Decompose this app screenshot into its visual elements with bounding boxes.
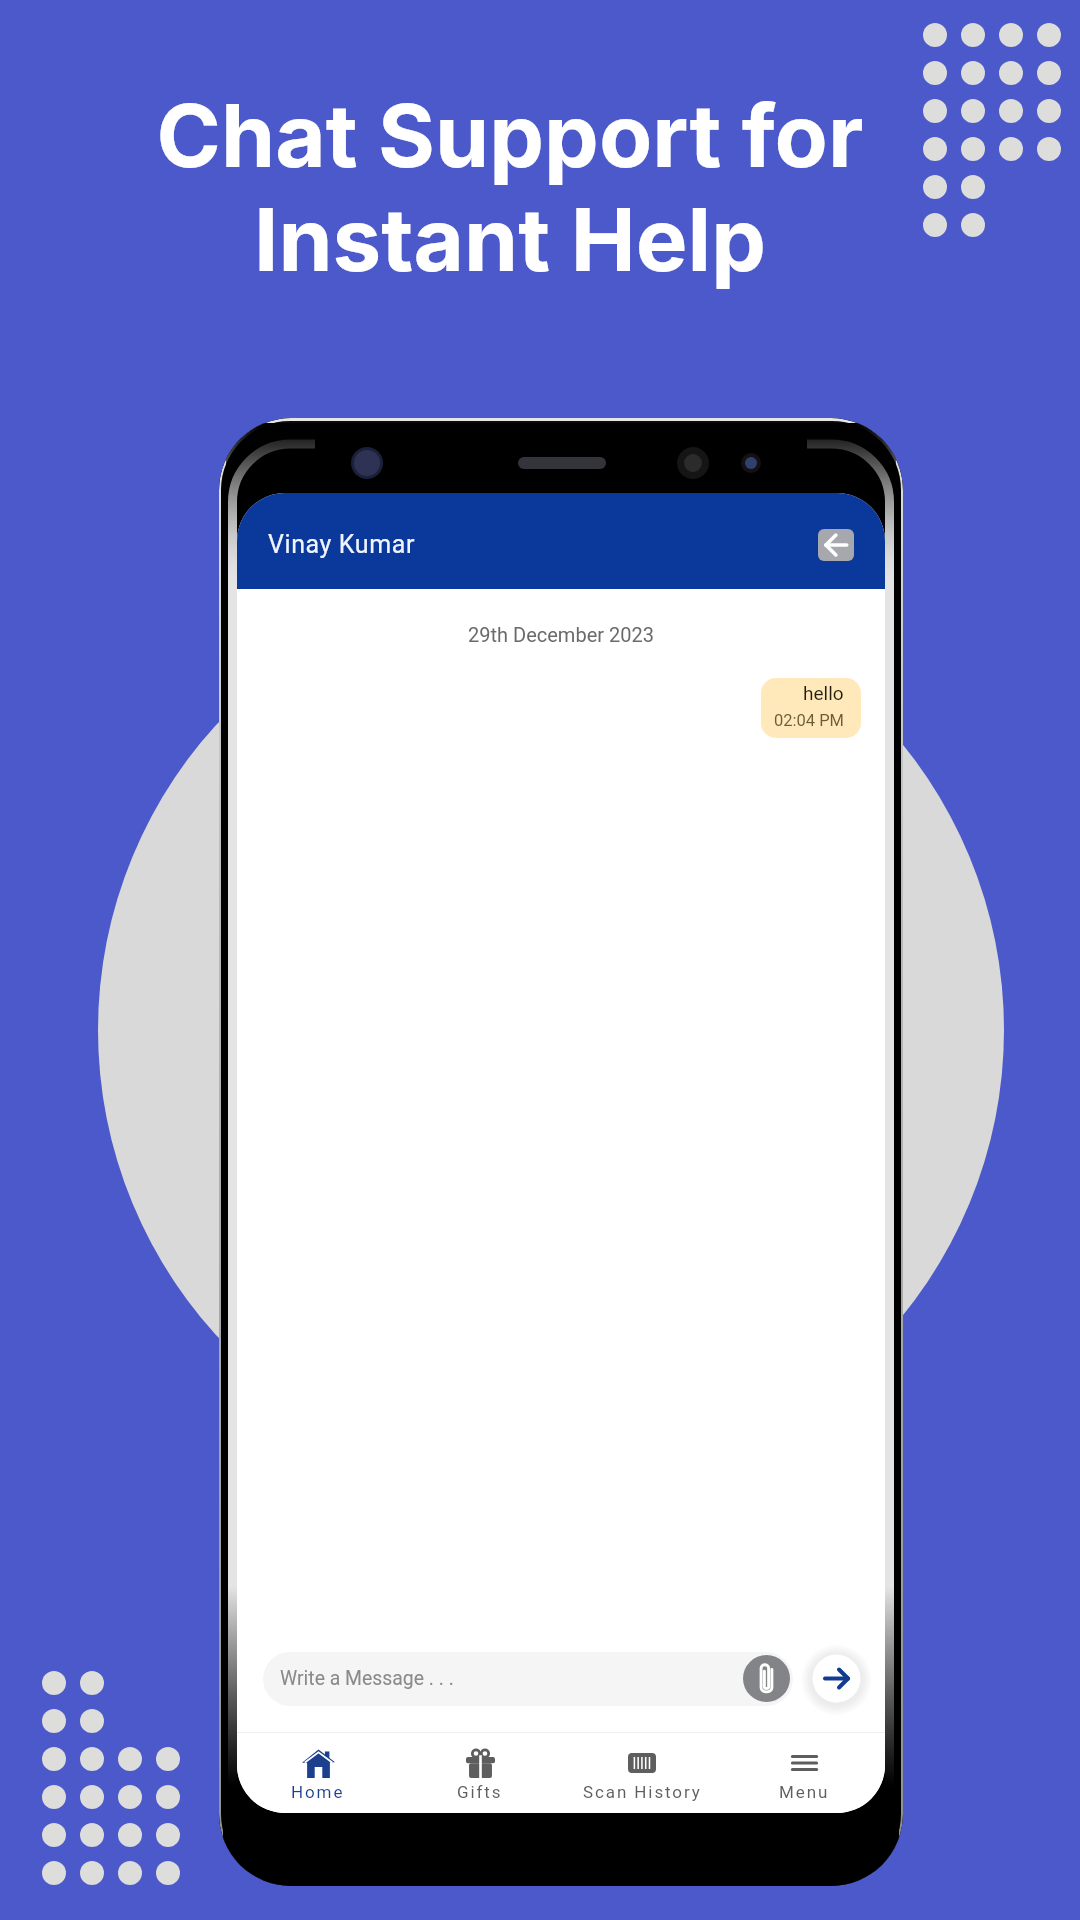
button[interactable]: Gifts [399, 1733, 561, 1813]
button[interactable]: hello [761, 678, 861, 738]
button[interactable]: Attach file [743, 1655, 790, 1702]
staticText: hello [803, 682, 844, 704]
staticText: 29th December 2023 [237, 623, 885, 646]
staticText: Vinay Kumar [268, 530, 416, 559]
button[interactable]: Menu [723, 1733, 885, 1813]
button[interactable]: Home [237, 1733, 399, 1813]
button[interactable]: Back [818, 529, 854, 561]
staticText: Write a Message . . . [280, 1667, 454, 1690]
staticText: 02:04 PM [774, 711, 844, 730]
staticText: Menu [779, 1782, 830, 1802]
staticText: Gifts [457, 1782, 503, 1802]
button[interactable]: Scan History [561, 1733, 723, 1813]
staticText: Chat Support for Instant Help [0, 83, 1050, 292]
staticText: Scan History [583, 1782, 702, 1802]
button[interactable]: Send message [805, 1647, 868, 1710]
staticText: Home [291, 1782, 345, 1802]
button[interactable]: Write a Message . . . [263, 1652, 793, 1706]
